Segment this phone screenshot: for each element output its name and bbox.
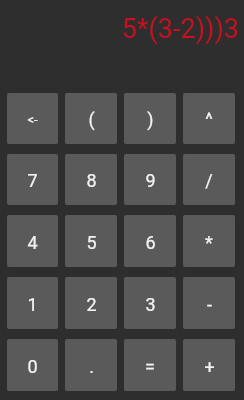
staticText: 5*(3-2)))3 [121,13,239,45]
button[interactable]: 0 [7,339,58,391]
staticText: . [89,356,94,377]
button[interactable]: 5 [65,215,117,267]
staticText: + [204,356,215,377]
button[interactable]: <- [7,93,58,144]
button[interactable]: 6 [124,215,176,267]
button[interactable]: ^ [183,93,235,144]
button[interactable]: 2 [65,277,117,329]
staticText: 9 [145,170,156,191]
staticText: 3 [145,294,156,315]
button[interactable]: ) [124,93,176,144]
button[interactable]: = [124,339,176,391]
staticText: <- [27,112,38,127]
staticText: / [205,170,213,191]
staticText: * [205,232,213,253]
button[interactable]: 3 [124,277,176,329]
button[interactable]: / [183,154,235,205]
button[interactable]: . [65,339,117,391]
staticText: 1 [27,294,38,315]
staticText: 8 [86,170,97,191]
staticText: ) [147,109,154,130]
button[interactable]: * [183,215,235,267]
button[interactable]: 9 [124,154,176,205]
button[interactable]: - [183,277,235,329]
button[interactable]: 1 [7,277,58,329]
staticText: 4 [27,232,38,253]
staticText: ^ [205,109,213,130]
staticText: 6 [145,232,156,253]
button[interactable]: 8 [65,154,117,205]
staticText: - [207,294,212,315]
button[interactable]: 4 [7,215,58,267]
button[interactable]: ( [65,93,117,144]
staticText: 5 [86,232,97,253]
staticText: ( [88,109,95,130]
staticText: = [145,356,155,377]
staticText: 2 [86,294,97,315]
staticText: 0 [27,356,38,377]
button[interactable]: + [183,339,235,391]
staticText: 7 [27,170,38,191]
button[interactable]: 7 [7,154,58,205]
